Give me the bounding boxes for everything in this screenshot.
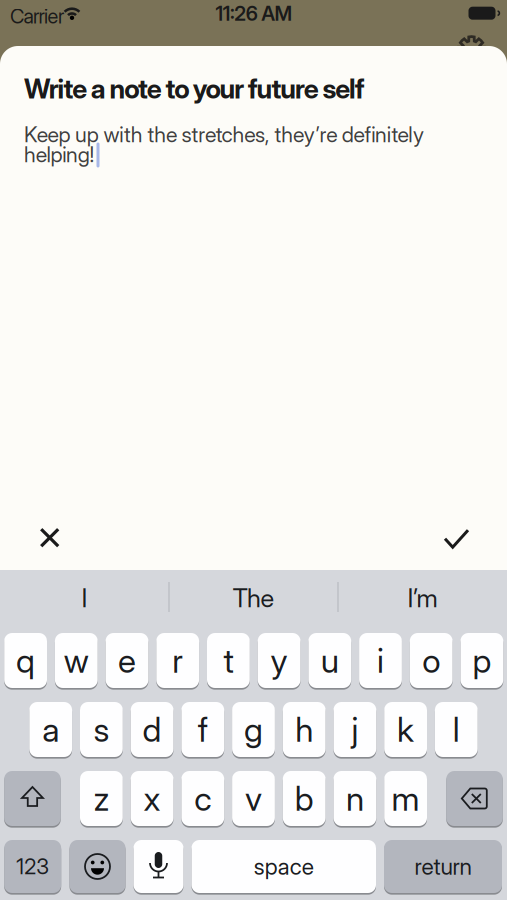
button[interactable]: v (232, 771, 275, 826)
button[interactable]: g (232, 702, 275, 757)
staticText: k (397, 710, 414, 749)
staticText: h (295, 710, 313, 749)
button[interactable]: u (308, 633, 351, 688)
button[interactable]: a (29, 702, 72, 757)
button[interactable]: t (207, 633, 250, 688)
button[interactable]: r (156, 633, 199, 688)
button[interactable]: h (283, 702, 326, 757)
button[interactable]: o (410, 633, 453, 688)
staticText: return (414, 853, 471, 880)
button[interactable]: q (4, 633, 47, 688)
button[interactable]: d (131, 702, 173, 757)
button[interactable]: y (258, 633, 300, 688)
staticText: q (16, 641, 35, 680)
button[interactable]: m (384, 771, 427, 826)
button[interactable]: Dictate (133, 840, 183, 893)
button[interactable]: n (333, 771, 376, 826)
staticText: b (295, 779, 314, 818)
button[interactable]: return (384, 840, 502, 893)
staticText: y (271, 641, 288, 680)
staticText: g (244, 710, 263, 749)
staticText: 11:26 AM (215, 2, 293, 25)
staticText: l (453, 710, 460, 749)
staticText: d (143, 710, 162, 749)
button[interactable]: Shift (4, 771, 61, 826)
button[interactable]: Save note (434, 517, 478, 561)
button[interactable]: e (106, 633, 148, 688)
staticText: Write a note to your future self (24, 73, 365, 104)
button[interactable]: x (131, 771, 173, 826)
button[interactable]: s (80, 702, 123, 757)
button[interactable]: Delete (446, 771, 503, 826)
button[interactable]: Cancel (28, 516, 72, 560)
button[interactable]: j (333, 702, 376, 757)
staticText: m (392, 779, 420, 818)
button[interactable]: k (384, 702, 427, 757)
button[interactable]: space (191, 840, 376, 893)
staticText: o (422, 641, 440, 680)
button[interactable]: l (435, 702, 478, 757)
staticText: i (377, 641, 384, 680)
staticText: I’m (407, 583, 437, 613)
button[interactable]: 123 (4, 840, 61, 893)
staticText: helping! (24, 142, 95, 167)
staticText: space (254, 853, 314, 880)
staticText: s (93, 710, 109, 749)
staticText: e (118, 641, 136, 680)
staticText: Keep up with the stretches, they’re defi… (24, 122, 424, 147)
button[interactable]: I (4, 572, 164, 624)
button[interactable]: f (181, 702, 224, 757)
staticText: n (346, 779, 364, 818)
staticText: f (198, 710, 208, 749)
staticText: j (351, 710, 358, 749)
staticText: 123 (16, 854, 49, 879)
button[interactable]: Emoji (69, 840, 125, 893)
button[interactable]: The (173, 572, 333, 624)
button[interactable]: z (80, 771, 123, 826)
staticText: r (172, 641, 183, 680)
staticText: z (93, 779, 109, 818)
button[interactable]: b (283, 771, 326, 826)
staticText: I (81, 583, 87, 613)
button[interactable]: I’m (342, 572, 502, 624)
button[interactable]: p (460, 633, 503, 688)
button[interactable]: i (359, 633, 402, 688)
button[interactable]: Settings (456, 35, 486, 65)
staticText: v (245, 779, 262, 818)
staticText: p (472, 641, 491, 680)
button[interactable]: c (181, 771, 224, 826)
staticText: c (194, 779, 211, 818)
staticText: w (64, 641, 89, 680)
staticText: The (232, 583, 274, 613)
staticText: Carrier (10, 4, 64, 28)
staticText: t (223, 641, 233, 680)
staticText: x (144, 779, 161, 818)
staticText: u (321, 641, 339, 680)
button[interactable]: w (55, 633, 98, 688)
staticText: a (42, 710, 59, 749)
